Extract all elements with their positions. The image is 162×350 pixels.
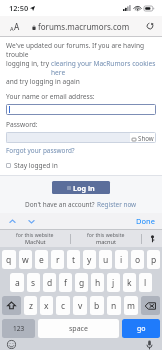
button[interactable]: e (35, 250, 48, 269)
button[interactable]: g (75, 273, 88, 292)
button[interactable]: s (27, 273, 40, 292)
button[interactable]: m (124, 296, 138, 315)
staticText: Password: (6, 120, 38, 129)
staticText: logging in, try (6, 59, 51, 68)
button[interactable]: go (122, 319, 160, 338)
staticText: w (22, 254, 29, 266)
button[interactable]: Done (136, 216, 155, 226)
button[interactable]: l (139, 273, 152, 292)
staticText: Log in (73, 183, 95, 193)
button[interactable]: space (38, 319, 119, 338)
button[interactable]: Dictation (144, 339, 155, 350)
staticText: e (39, 254, 44, 266)
button[interactable]: Backspace (141, 296, 160, 315)
staticText: A (14, 21, 20, 32)
button[interactable]: Show (130, 132, 156, 143)
staticText: l (144, 277, 147, 289)
staticText: j (112, 277, 115, 289)
button[interactable]: w (19, 250, 32, 269)
staticText: m (127, 300, 135, 312)
button[interactable]: r (51, 250, 64, 269)
button[interactable]: Stay logged in (6, 161, 58, 170)
staticText: A (10, 25, 14, 32)
button[interactable]: f (59, 273, 72, 292)
button[interactable]: 123 (2, 319, 35, 338)
staticText: go (137, 324, 146, 334)
button[interactable]: Previous field (7, 216, 17, 226)
staticText: z (29, 300, 33, 312)
staticText: c (61, 300, 66, 312)
staticText: t (72, 254, 76, 266)
button[interactable]: n (107, 296, 121, 315)
button[interactable]: b (90, 296, 104, 315)
button[interactable]: o (131, 250, 144, 269)
staticText: macnut (96, 238, 116, 246)
staticText: o (135, 254, 141, 266)
button[interactable]: q (2, 250, 16, 269)
staticText: for this website (87, 231, 125, 238)
button[interactable]: Register now (97, 200, 137, 209)
button[interactable]: y (83, 250, 96, 269)
button[interactable]: x (40, 296, 53, 315)
button[interactable]: z (24, 296, 37, 315)
staticText: y (87, 254, 92, 266)
button[interactable]: for this website (0, 230, 70, 247)
button[interactable]: i (115, 250, 128, 269)
button[interactable]: Next field (26, 216, 36, 226)
staticText: u (103, 254, 109, 266)
button[interactable]: a (10, 273, 24, 292)
button[interactable] (6, 132, 130, 143)
staticText: r (56, 254, 60, 266)
staticText: d (47, 277, 53, 289)
button[interactable]: v (73, 296, 87, 315)
button[interactable]: Log in (52, 181, 110, 194)
staticText: v (78, 300, 83, 312)
staticText: x (44, 300, 49, 312)
staticText: n (111, 300, 117, 312)
staticText: k (127, 277, 132, 289)
button[interactable]: Passwords (142, 230, 162, 247)
button[interactable] (6, 104, 156, 115)
staticText: Don't have an account? (25, 200, 97, 209)
staticText: p (151, 254, 157, 266)
button[interactable]: Emoji (6, 339, 17, 350)
staticText: for this website (16, 231, 54, 238)
staticText: f (64, 277, 67, 289)
staticText: and try logging in again (6, 77, 80, 86)
staticText: forums.macrumors.com (38, 21, 130, 32)
button[interactable]: clearing your MacRumors cookies here (51, 59, 156, 77)
staticText: Your name or email address: (6, 92, 95, 101)
button[interactable]: j (107, 273, 120, 292)
staticText: 12:50 (9, 3, 29, 13)
staticText: s (31, 277, 36, 289)
button[interactable]: p (147, 250, 160, 269)
staticText: Show (138, 134, 154, 142)
button[interactable]: t (67, 250, 80, 269)
button[interactable]: h (91, 273, 104, 292)
button[interactable]: Reload (144, 20, 156, 32)
staticText: q (6, 254, 12, 266)
button[interactable]: Forgot your password? (6, 146, 75, 155)
staticText: Stay logged in (14, 161, 58, 170)
button[interactable]: d (43, 273, 56, 292)
button[interactable]: for this website (71, 230, 141, 247)
staticText: MacNut (25, 238, 46, 246)
staticText: b (94, 300, 100, 312)
button[interactable]: k (123, 273, 136, 292)
staticText: i (120, 254, 123, 266)
button[interactable]: c (56, 296, 70, 315)
staticText: 123 (13, 324, 25, 333)
staticText: We've updated our forums. If you are hav… (6, 41, 156, 59)
staticText: h (95, 277, 101, 289)
button[interactable]: Shift (2, 296, 21, 315)
staticText: g (79, 277, 85, 289)
staticText: space (69, 324, 88, 334)
button[interactable]: Page settings (8, 19, 22, 34)
staticText: a (15, 277, 20, 289)
button[interactable]: u (99, 250, 112, 269)
